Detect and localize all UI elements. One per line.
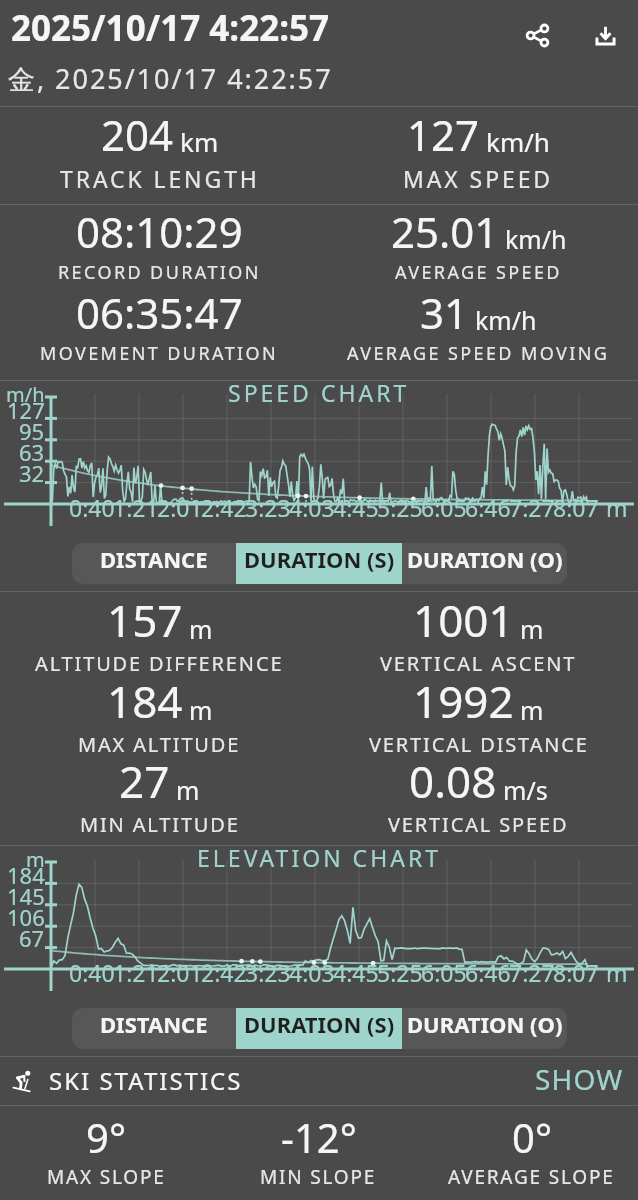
staticText: 145 xyxy=(7,881,45,911)
staticText: ELEVATION CHART xyxy=(197,842,441,873)
staticText: AVERAGE SPEED MOVING xyxy=(347,341,610,366)
staticText: SPEED CHART xyxy=(228,377,410,408)
staticText: 7:27 xyxy=(509,957,555,988)
staticText: m xyxy=(189,693,213,727)
staticText: 0:40 xyxy=(69,492,115,523)
staticText: 3:23 xyxy=(245,957,291,988)
staticText: 0:40 xyxy=(69,957,115,988)
staticText: 95 xyxy=(19,416,45,446)
staticText: 127 xyxy=(7,395,45,425)
staticText: DURATION (O) xyxy=(407,1009,563,1039)
staticText: 2:42 xyxy=(201,957,247,988)
staticText: ALTITUDE DIFFERENCE xyxy=(35,650,284,677)
staticText: AVERAGE SLOPE xyxy=(448,1164,615,1190)
staticText: DURATION (S) xyxy=(244,1009,395,1039)
button[interactable]: SKI STATISTICS xyxy=(0,1056,638,1105)
button[interactable]: DURATION (S) xyxy=(236,1008,402,1049)
staticText: 金, 2025/10/17 4:22:57 xyxy=(8,60,333,97)
staticText: 08:10:29 xyxy=(76,203,243,260)
staticText: m xyxy=(606,957,628,988)
staticText: RECORD DURATION xyxy=(58,260,261,285)
staticText: VERTICAL DISTANCE xyxy=(369,731,589,758)
staticText: 6:46 xyxy=(465,957,511,988)
staticText: 1992 xyxy=(413,671,514,731)
staticText: km/h xyxy=(486,124,550,159)
staticText: TRACK LENGTH xyxy=(60,163,260,194)
staticText: 4:45 xyxy=(333,492,379,523)
staticText: m xyxy=(520,693,544,727)
staticText: 6:05 xyxy=(421,492,467,523)
staticText: 6:05 xyxy=(421,957,467,988)
staticText: MAX SPEED xyxy=(403,163,554,194)
staticText: 184 xyxy=(107,671,183,731)
staticText: MAX SLOPE xyxy=(47,1164,166,1190)
staticText: 8:07 xyxy=(553,492,599,523)
staticText: DURATION (S) xyxy=(244,544,395,574)
staticText: 2:42 xyxy=(201,492,247,523)
staticText: m xyxy=(606,492,628,523)
staticText: SKI STATISTICS xyxy=(49,1064,530,1097)
staticText: 6:46 xyxy=(465,492,511,523)
staticText: m/s xyxy=(503,773,548,807)
staticText: 32 xyxy=(19,458,45,488)
staticText: 157 xyxy=(107,590,183,650)
staticText: m xyxy=(189,612,213,646)
staticText: DISTANCE xyxy=(100,544,208,574)
staticText: DURATION (O) xyxy=(407,544,563,574)
staticText: 4:03 xyxy=(289,957,335,988)
staticText: 7:27 xyxy=(509,492,555,523)
staticText: 1001 xyxy=(413,590,514,650)
staticText: km xyxy=(180,124,219,159)
staticText: km/h xyxy=(505,222,567,256)
staticText: 106 xyxy=(7,902,45,932)
button[interactable]: DISTANCE xyxy=(72,1008,236,1049)
staticText: 1:21 xyxy=(113,957,159,988)
staticText: 3:23 xyxy=(245,492,291,523)
staticText: 5:25 xyxy=(377,492,423,523)
staticText: 2:01 xyxy=(157,957,203,988)
staticText: 2025/10/17 4:22:57 xyxy=(11,4,330,52)
staticText: 0° xyxy=(512,1110,552,1164)
staticText: m xyxy=(176,773,200,807)
button[interactable]: SHOW xyxy=(530,1056,629,1105)
staticText: m xyxy=(26,846,45,873)
button[interactable]: DURATION (O) xyxy=(402,1008,567,1049)
staticText: -12° xyxy=(281,1110,357,1164)
button[interactable]: Share xyxy=(513,11,561,59)
staticText: 184 xyxy=(7,860,45,890)
staticText: 204 xyxy=(101,106,174,163)
staticText: SHOW xyxy=(535,1060,624,1097)
staticText: 127 xyxy=(407,106,480,163)
staticText: MIN SLOPE xyxy=(260,1164,377,1190)
staticText: 8:07 xyxy=(553,957,599,988)
staticText: 4:03 xyxy=(289,492,335,523)
staticText: 0.08 xyxy=(409,751,497,811)
staticText: 31 xyxy=(420,284,469,341)
staticText: AVERAGE SPEED xyxy=(395,260,562,285)
staticText: DISTANCE xyxy=(100,1009,208,1039)
button[interactable]: Download xyxy=(581,11,629,59)
staticText: 1:21 xyxy=(113,492,159,523)
staticText: 4:45 xyxy=(333,957,379,988)
staticText: MAX ALTITUDE xyxy=(78,731,241,758)
button[interactable]: DURATION (O) xyxy=(402,543,567,584)
staticText: 25.01 xyxy=(391,203,499,260)
staticText: 67 xyxy=(19,923,45,953)
staticText: VERTICAL ASCENT xyxy=(380,650,577,677)
button[interactable]: DURATION (S) xyxy=(236,543,402,584)
staticText: MOVEMENT DURATION xyxy=(40,341,279,366)
button[interactable]: DISTANCE xyxy=(72,543,236,584)
staticText: 27 xyxy=(119,751,170,811)
staticText: MIN ALTITUDE xyxy=(80,811,240,838)
staticText: 5:25 xyxy=(377,957,423,988)
staticText: km/h xyxy=(475,303,537,337)
staticText: 9° xyxy=(86,1110,126,1164)
staticText: 2:01 xyxy=(157,492,203,523)
staticText: 63 xyxy=(19,437,45,467)
staticText: VERTICAL SPEED xyxy=(388,811,569,838)
staticText: 06:35:47 xyxy=(76,284,243,341)
staticText: m/h xyxy=(6,381,45,408)
staticText: m xyxy=(520,612,544,646)
